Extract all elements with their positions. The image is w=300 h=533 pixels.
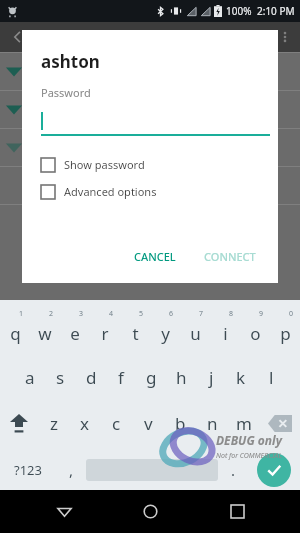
button[interactable]: Recents <box>214 490 260 533</box>
button[interactable]: l <box>256 356 286 398</box>
staticText: a <box>25 366 35 389</box>
staticText: v <box>144 412 153 435</box>
button[interactable]: f <box>106 356 136 398</box>
button[interactable]: 1 <box>0 308 30 352</box>
button[interactable]: k <box>226 356 256 398</box>
button[interactable]: . <box>218 450 248 490</box>
button[interactable]: 9 <box>240 308 270 352</box>
button[interactable]: , <box>56 450 86 490</box>
staticText: 2:10 PM <box>257 4 295 18</box>
button[interactable]: h <box>166 356 196 398</box>
staticText: h <box>176 366 187 389</box>
staticText: o <box>250 322 261 345</box>
staticText: 3 <box>79 309 84 319</box>
staticText: z <box>50 412 58 435</box>
staticText: t <box>132 322 139 345</box>
button[interactable]: 0 <box>270 308 300 352</box>
button[interactable]: c <box>100 402 132 444</box>
button[interactable]: n <box>196 402 228 444</box>
staticText: k <box>236 366 246 389</box>
button[interactable]: v <box>132 402 164 444</box>
button[interactable]: ?123 <box>0 450 56 490</box>
button[interactable]: z <box>38 402 69 444</box>
staticText: 0 <box>289 309 294 319</box>
button[interactable]: m <box>228 402 260 444</box>
staticText: g <box>146 366 157 389</box>
button[interactable]: CONNECT <box>194 242 266 271</box>
staticText: s <box>56 366 65 389</box>
staticText: x <box>80 412 89 435</box>
button[interactable]: Advanced options <box>41 184 266 199</box>
staticText: e <box>70 322 80 345</box>
button[interactable]: 4 <box>90 308 120 352</box>
staticText: , <box>69 460 74 480</box>
button[interactable]: d <box>76 356 106 398</box>
staticText: . <box>231 460 236 480</box>
button[interactable]: 7 <box>180 308 210 352</box>
button[interactable]: b <box>164 402 196 444</box>
button[interactable]: Show password <box>41 157 266 172</box>
staticText: 100% <box>226 4 252 18</box>
staticText: q <box>10 322 21 345</box>
button[interactable]: Done <box>257 453 291 487</box>
staticText: 4 <box>109 309 114 319</box>
staticText: l <box>269 366 274 389</box>
staticText: Password <box>41 85 91 100</box>
staticText: CONNECT <box>204 249 256 264</box>
button[interactable]: x <box>69 402 100 444</box>
staticText: Wi-Fi <box>55 27 90 47</box>
staticText: 8 <box>229 309 234 319</box>
button[interactable] <box>41 110 270 136</box>
button[interactable]: Shift <box>0 402 38 444</box>
button[interactable]: g <box>136 356 166 398</box>
staticText: p <box>280 322 291 345</box>
staticText: 5 <box>139 309 144 319</box>
staticText: 2 <box>49 309 54 319</box>
staticText: Show password <box>64 157 145 172</box>
staticText: 7 <box>199 309 204 319</box>
staticText: m <box>236 412 252 435</box>
button[interactable]: Back <box>41 490 87 533</box>
button[interactable]: 8 <box>210 308 240 352</box>
button[interactable]: CANCEL <box>124 242 186 271</box>
button[interactable]: Backspace <box>260 402 300 444</box>
staticText: j <box>209 366 214 389</box>
staticText: DEBUG only <box>216 432 282 448</box>
staticText: ashton <box>41 50 100 73</box>
staticText: i <box>223 322 228 345</box>
button[interactable]: j <box>196 356 226 398</box>
staticText: n <box>207 412 218 435</box>
button[interactable]: Home <box>127 490 173 533</box>
staticText: 1 <box>19 309 24 319</box>
button[interactable]: 6 <box>150 308 180 352</box>
staticText: f <box>118 366 124 389</box>
staticText: Advanced options <box>64 184 157 199</box>
button[interactable]: 3 <box>60 308 90 352</box>
staticText: 6 <box>169 309 174 319</box>
staticText: u <box>190 322 201 345</box>
staticText: w <box>38 322 52 345</box>
staticText: 9 <box>259 309 264 319</box>
staticText: c <box>112 412 121 435</box>
staticText: b <box>175 412 186 435</box>
staticText: r <box>101 322 109 345</box>
button[interactable]: a <box>14 356 45 398</box>
button[interactable]: s <box>45 356 76 398</box>
staticText: Not for COMMERCIAL <box>216 451 282 461</box>
button[interactable]: 5 <box>120 308 150 352</box>
button[interactable]: Space <box>86 459 218 481</box>
staticText: d <box>86 366 97 389</box>
staticText: y <box>161 322 170 345</box>
button[interactable]: 2 <box>30 308 60 352</box>
staticText: ?123 <box>14 461 42 479</box>
staticText: CANCEL <box>134 249 176 264</box>
